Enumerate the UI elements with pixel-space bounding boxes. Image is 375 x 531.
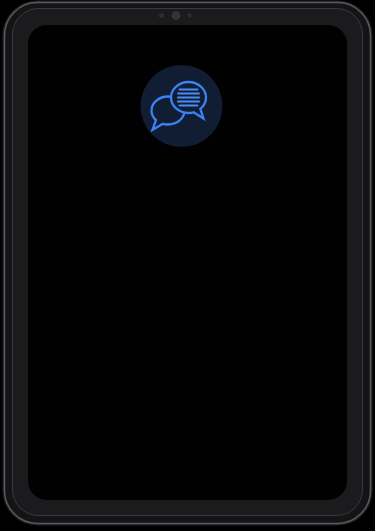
button[interactable]: Messaging app device preview [0,0,375,531]
